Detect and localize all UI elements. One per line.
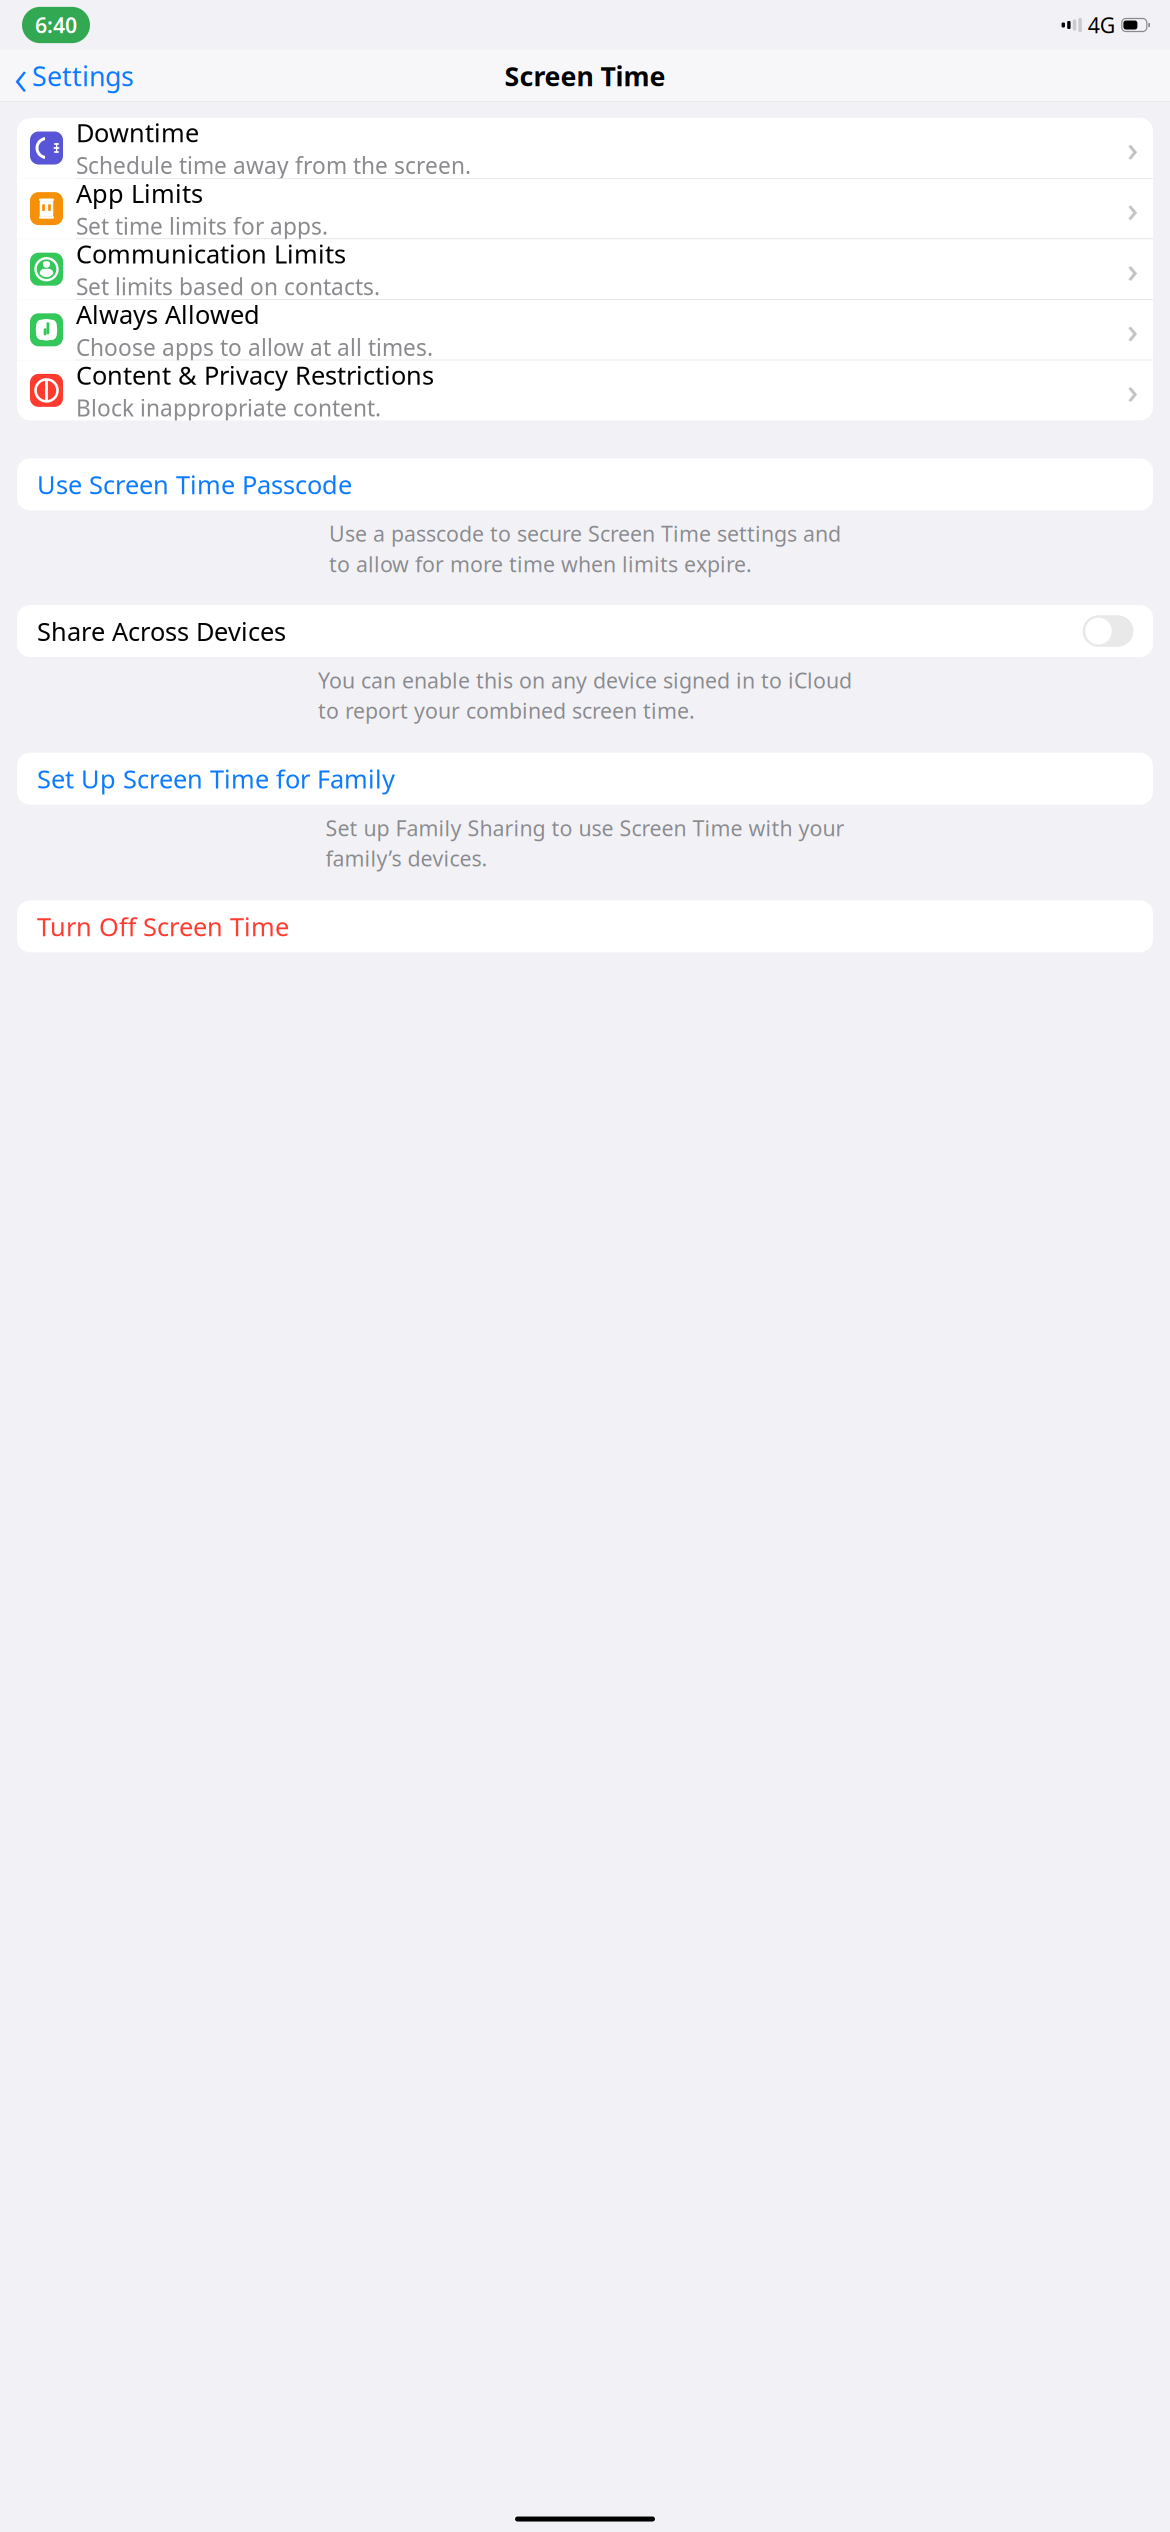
button[interactable]: Communication Limits: [17, 239, 1153, 300]
button[interactable]: Turn Off Screen Time: [17, 900, 1153, 952]
staticText: App Limits: [76, 176, 203, 210]
staticText: Block inappropriate content.: [76, 393, 381, 423]
staticText: Screen Time: [504, 58, 665, 94]
button[interactable]: Downtime: [17, 118, 1153, 179]
staticText: Settings: [32, 58, 134, 94]
button[interactable]: Always Allowed: [17, 300, 1153, 360]
staticText: 6:40: [35, 11, 77, 39]
staticText: Schedule time away from the screen.: [76, 150, 471, 180]
staticText: Set Up Screen Time for Family: [37, 762, 395, 795]
button[interactable]: Share Across Devices: [1083, 616, 1133, 646]
button[interactable]: Set Up Screen Time for Family: [17, 753, 1153, 805]
button[interactable]: Use Screen Time Passcode: [17, 458, 1153, 510]
staticText: Communication Limits: [76, 237, 346, 270]
staticText: ›: [1127, 125, 1138, 171]
staticText: Set limits based on contacts.: [76, 271, 380, 302]
staticText: ›: [1127, 246, 1138, 292]
staticText: Set time limits for apps.: [76, 211, 328, 241]
staticText: ›: [1127, 186, 1138, 232]
staticText: Turn Off Screen Time: [37, 910, 289, 943]
staticText: Set up Family Sharing to use Screen Time…: [325, 814, 844, 842]
staticText: Downtime: [76, 116, 199, 149]
staticText: Always Allowed: [76, 297, 260, 331]
staticText: ›: [1127, 307, 1138, 353]
button[interactable]: Content & Privacy Restrictions: [17, 360, 1153, 420]
staticText: Use Screen Time Passcode: [37, 468, 352, 501]
staticText: Share Across Devices: [37, 614, 286, 648]
staticText: to allow for more time when limits expir…: [329, 550, 752, 578]
staticText: family’s devices.: [325, 844, 487, 872]
staticText: 4G: [1088, 11, 1116, 39]
button[interactable]: App Limits: [17, 179, 1153, 239]
staticText: to report your combined screen time.: [318, 696, 695, 725]
button[interactable]: ‹: [0, 38, 134, 114]
staticText: ‹: [14, 42, 27, 110]
staticText: Use a passcode to secure Screen Time set…: [329, 519, 841, 548]
staticText: ›: [1127, 367, 1138, 413]
staticText: Choose apps to allow at all times.: [76, 332, 433, 362]
staticText: Content & Privacy Restrictions: [76, 358, 434, 392]
staticText: You can enable this on any device signed…: [318, 666, 852, 694]
